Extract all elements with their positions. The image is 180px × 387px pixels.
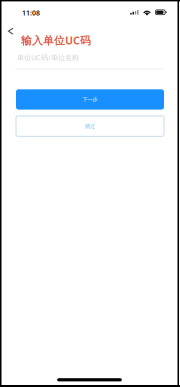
button[interactable]: 下一步 xyxy=(16,89,164,110)
staticText: 11:08 xyxy=(22,8,40,18)
staticText: 单位UC码/单位名称 xyxy=(17,52,79,62)
button[interactable]: Back xyxy=(0,0,22,43)
button[interactable]: 跳过 xyxy=(16,116,164,136)
staticText: 输入单位UC码 xyxy=(21,33,91,47)
staticText: 跳过 xyxy=(85,123,95,129)
staticText: 下一步 xyxy=(82,96,97,103)
